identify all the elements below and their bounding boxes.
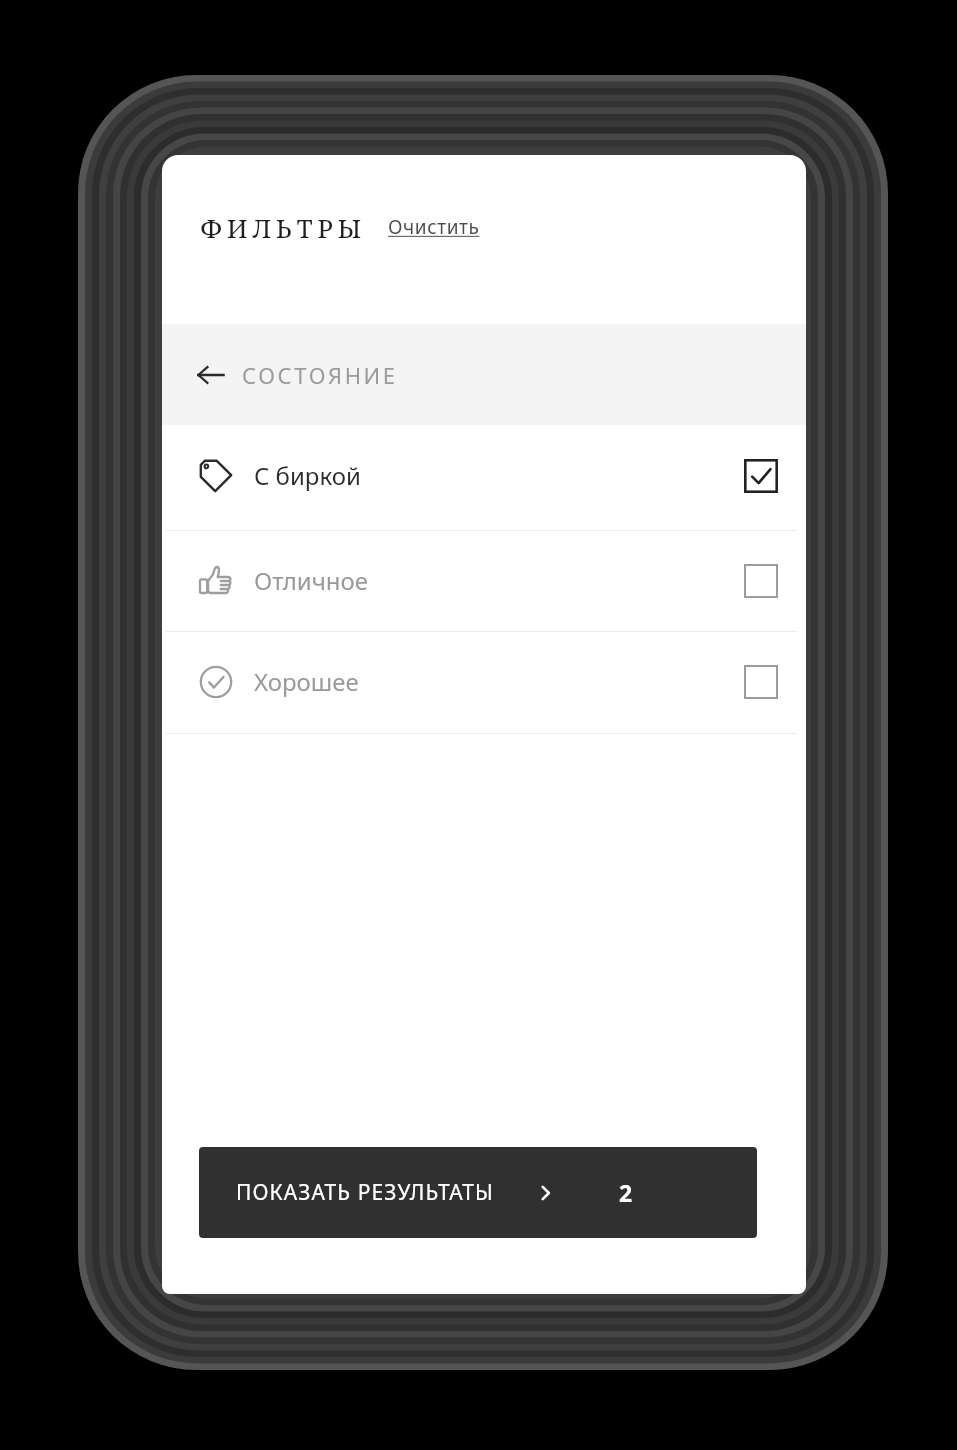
staticText: С биркой [254, 459, 361, 492]
staticText: Очистить [388, 214, 480, 240]
button[interactable]: С биркой [162, 425, 806, 526]
staticText: ПОКАЗАТЬ РЕЗУЛЬТАТЫ [236, 1178, 495, 1207]
staticText: 2 [619, 1177, 633, 1208]
other: Unchecked [738, 659, 784, 705]
button[interactable]: Back [162, 324, 806, 425]
staticText: ФИЛЬТРЫ [200, 210, 366, 245]
button[interactable]: Очистить [386, 210, 482, 244]
other: Checked [738, 453, 784, 499]
button[interactable]: Хорошее [162, 631, 806, 732]
other: Back [196, 360, 226, 390]
button[interactable]: ПОКАЗАТЬ РЕЗУЛЬТАТЫ [199, 1147, 757, 1238]
other: Unchecked [738, 558, 784, 604]
staticText: Хорошее [254, 665, 359, 698]
staticText: Отличное [254, 564, 369, 597]
button[interactable]: Отличное [162, 530, 806, 631]
staticText: СОСТОЯНИЕ [242, 360, 398, 390]
